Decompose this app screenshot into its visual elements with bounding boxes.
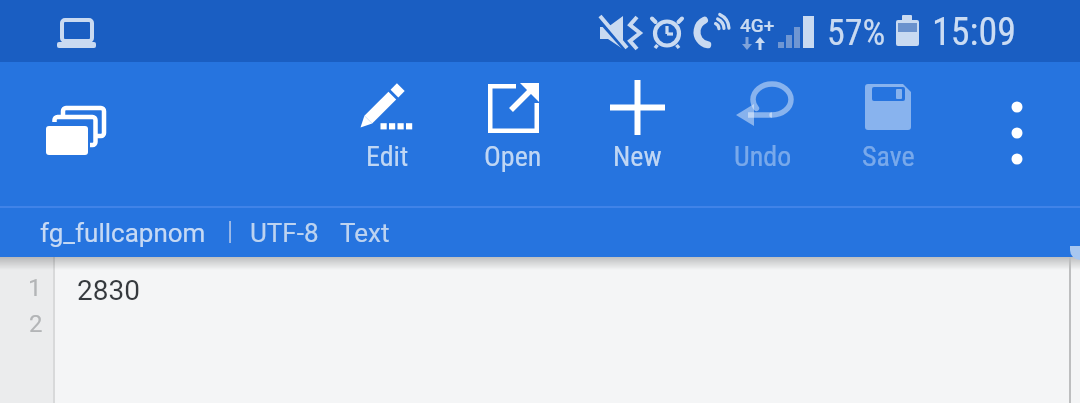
staticText: Open [484,140,542,173]
staticText: New [613,140,662,173]
staticText: UTF-8 [250,218,319,248]
button[interactable]: New [574,74,700,186]
button[interactable] [992,92,1042,198]
staticText: 2830 [77,274,140,307]
button[interactable]: 1 [0,257,1080,403]
staticText: 1 [28,274,42,302]
staticText: Text [340,218,390,248]
staticText: Edit [366,140,409,173]
staticText: Undo [734,140,792,173]
staticText: 57% [827,12,886,54]
button[interactable]: Open [450,74,576,186]
button[interactable]: Edit [324,74,450,186]
staticText: | [227,217,234,246]
staticText: 15:09 [932,10,1016,55]
button[interactable]: Save [825,74,951,186]
button[interactable] [36,100,112,172]
staticText: Save [862,140,915,173]
staticText: 2 [29,310,43,338]
staticText: 4G+ [740,14,775,36]
button[interactable]: Undo [700,74,826,186]
button[interactable]: fg_fullcapnom [40,218,206,248]
